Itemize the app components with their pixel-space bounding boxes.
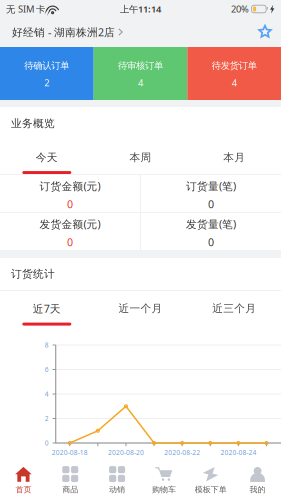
staticText: 近7天 [33,301,61,316]
staticText: 近一个月 [118,302,162,315]
staticText: 4 [138,76,143,89]
staticText: 上午11:14 [120,3,161,15]
staticText: 模板下单 [195,485,227,494]
staticText: 6 [45,365,49,374]
staticText: 购物车 [152,485,176,494]
staticText: 今天 [36,151,58,164]
staticText: 2020-08-22 [164,448,200,457]
button[interactable]: 本周 [94,140,187,174]
button[interactable]: 待确认订单 [0,47,94,100]
staticText: 待发货订单 [212,60,257,71]
button[interactable]: 商品 [47,456,94,500]
staticText: 发货金额(元) [39,217,100,231]
staticText: 4 [232,76,237,89]
staticText: 业务概览 [11,117,55,130]
button[interactable]: 今天 [0,140,94,174]
staticText: 0 [45,439,49,447]
button[interactable]: 近一个月 [94,291,187,325]
button[interactable]: 收藏 [249,18,281,46]
staticText: 订货金额(元) [39,179,100,193]
staticText: 订货量(笔) [186,179,236,193]
button[interactable]: 我的 [234,456,281,500]
staticText: 0 [208,235,214,249]
button[interactable]: 近三个月 [187,291,281,325]
button[interactable]: 购物车 [140,456,187,500]
staticText: 8 [45,341,49,349]
staticText: 2020-08-18 [52,448,88,457]
staticText: 4 [45,390,49,398]
staticText: 首页 [15,485,31,494]
staticText: 无 SIM 卡 [6,3,45,15]
staticText: 0 [208,197,214,211]
button[interactable]: 模板下单 [187,456,234,500]
staticText: 2020-08-20 [108,448,144,457]
staticText: 订货统计 [11,267,55,280]
staticText: 2020-08-24 [220,448,256,457]
button[interactable]: 近7天 [0,291,94,325]
staticText: 近三个月 [212,302,256,315]
staticText: 20% [231,3,249,15]
staticText: 0 [67,235,73,249]
button[interactable]: 本月 [187,140,281,174]
staticText: 0 [67,197,73,211]
button[interactable]: 待审核订单 [94,47,187,100]
button[interactable]: 动销 [94,456,140,500]
staticText: 2 [44,76,49,89]
staticText: 动销 [109,485,125,494]
button[interactable]: 待发货订单 [187,47,281,100]
staticText: 本月 [223,151,245,164]
staticText: 商品 [62,485,78,494]
staticText: 待确认订单 [24,60,69,71]
staticText: 发货量(笔) [186,217,236,231]
staticText: 2 [45,414,49,423]
staticText: 待审核订单 [118,60,163,71]
staticText: 本周 [129,151,151,164]
button[interactable]: 首页 [0,456,47,500]
staticText: 我的 [250,485,266,494]
staticText: 好经销 - 湖南株洲2店 [12,25,115,39]
button[interactable]: 好经销 - 湖南株洲2店 [0,18,131,46]
